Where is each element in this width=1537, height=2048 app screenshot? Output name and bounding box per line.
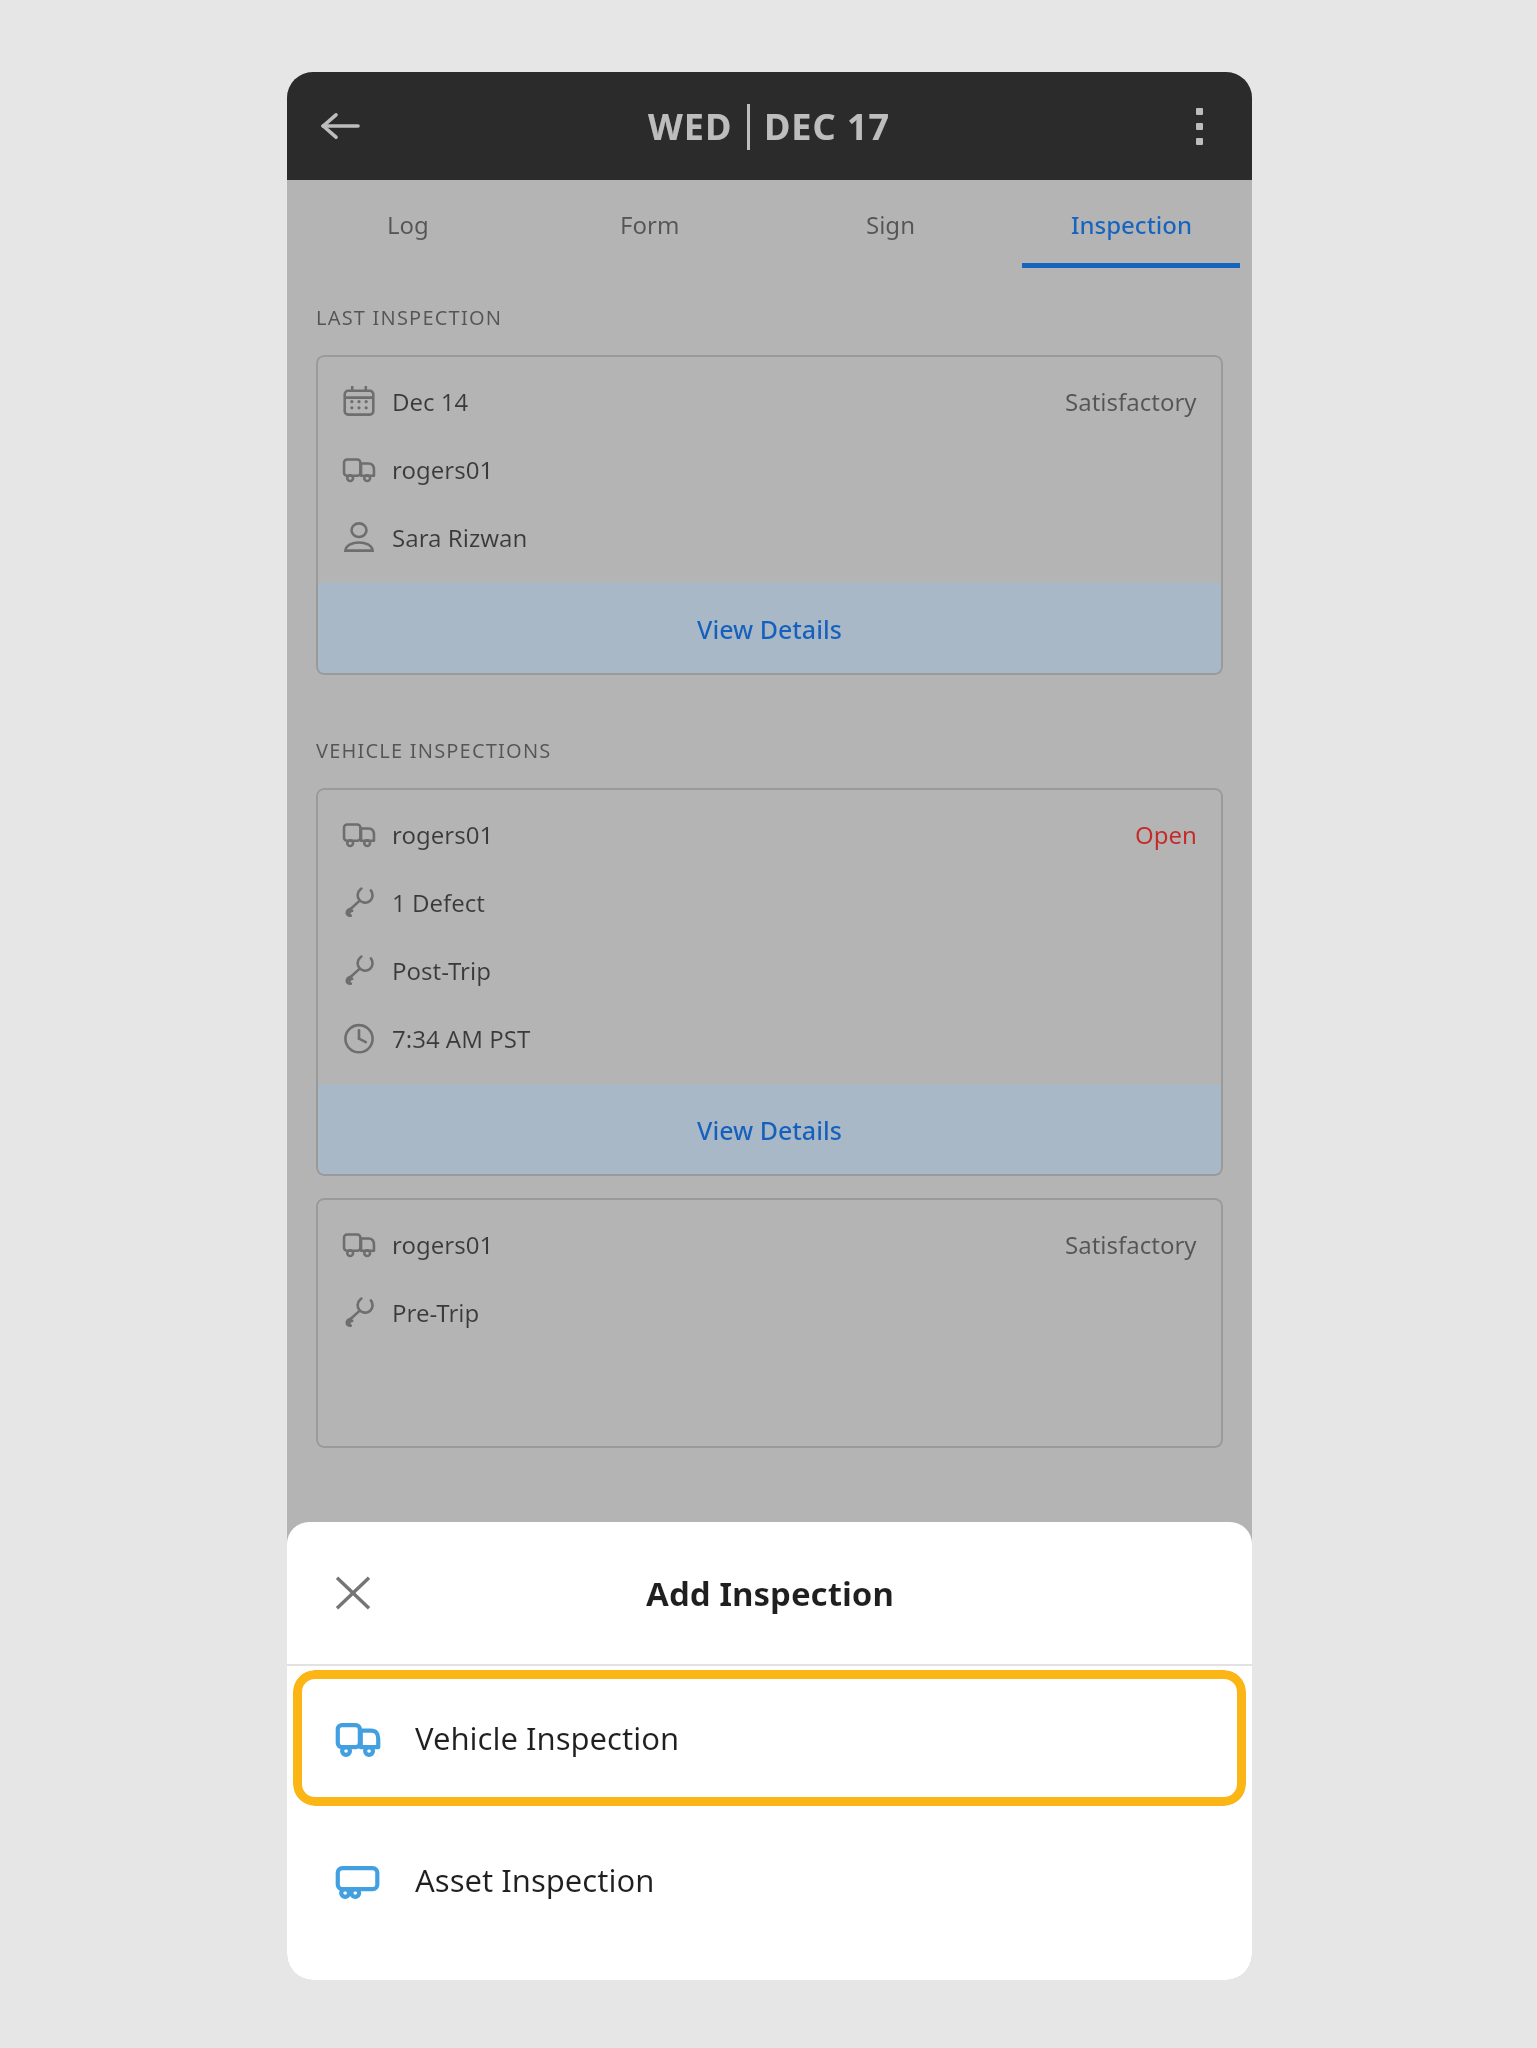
staticText: Satisfactory <box>1065 385 1197 418</box>
staticText: Satisfactory <box>1065 1228 1197 1261</box>
staticText: View Details <box>697 612 842 646</box>
button[interactable]: Back <box>309 95 371 157</box>
staticText: View Details <box>697 1113 842 1147</box>
staticText: DEC 17 <box>764 102 891 151</box>
staticText: Pre-Trip <box>392 1296 480 1329</box>
staticText: Log <box>387 208 429 241</box>
staticText: Vehicle Inspection <box>415 1717 680 1759</box>
staticText: Sara Rizwan <box>392 521 528 554</box>
staticText: rogers01 <box>392 453 494 486</box>
staticText: 1 Defect <box>392 886 485 919</box>
staticText: Dec 14 <box>392 385 469 418</box>
button[interactable]: Inspection <box>1011 180 1252 268</box>
button[interactable]: Asset Inspection <box>287 1810 1252 1950</box>
staticText: VEHICLE INSPECTIONS <box>316 737 552 764</box>
staticText: Open <box>1135 818 1197 851</box>
button[interactable]: Sign <box>770 180 1011 268</box>
staticText: Add Inspection <box>646 1571 894 1616</box>
staticText: Inspection <box>1071 208 1193 241</box>
staticText: Sign <box>866 208 915 241</box>
staticText: LAST INSPECTION <box>316 304 503 331</box>
staticText: Form <box>620 208 680 241</box>
button[interactable]: Log <box>287 180 529 268</box>
staticText: rogers01 <box>392 818 494 851</box>
button[interactable]: Close <box>323 1563 383 1623</box>
button[interactable]: More options <box>1168 95 1230 157</box>
button[interactable]: View Details <box>316 583 1223 675</box>
staticText: Asset Inspection <box>415 1859 655 1901</box>
button[interactable]: Form <box>529 180 770 268</box>
staticText: 7:34 AM PST <box>392 1022 531 1055</box>
staticText: rogers01 <box>392 1228 494 1261</box>
button[interactable]: View Details <box>316 1084 1223 1176</box>
button[interactable]: Vehicle Inspection <box>293 1670 1246 1806</box>
staticText: WED <box>648 102 733 151</box>
staticText: Post-Trip <box>392 954 491 987</box>
